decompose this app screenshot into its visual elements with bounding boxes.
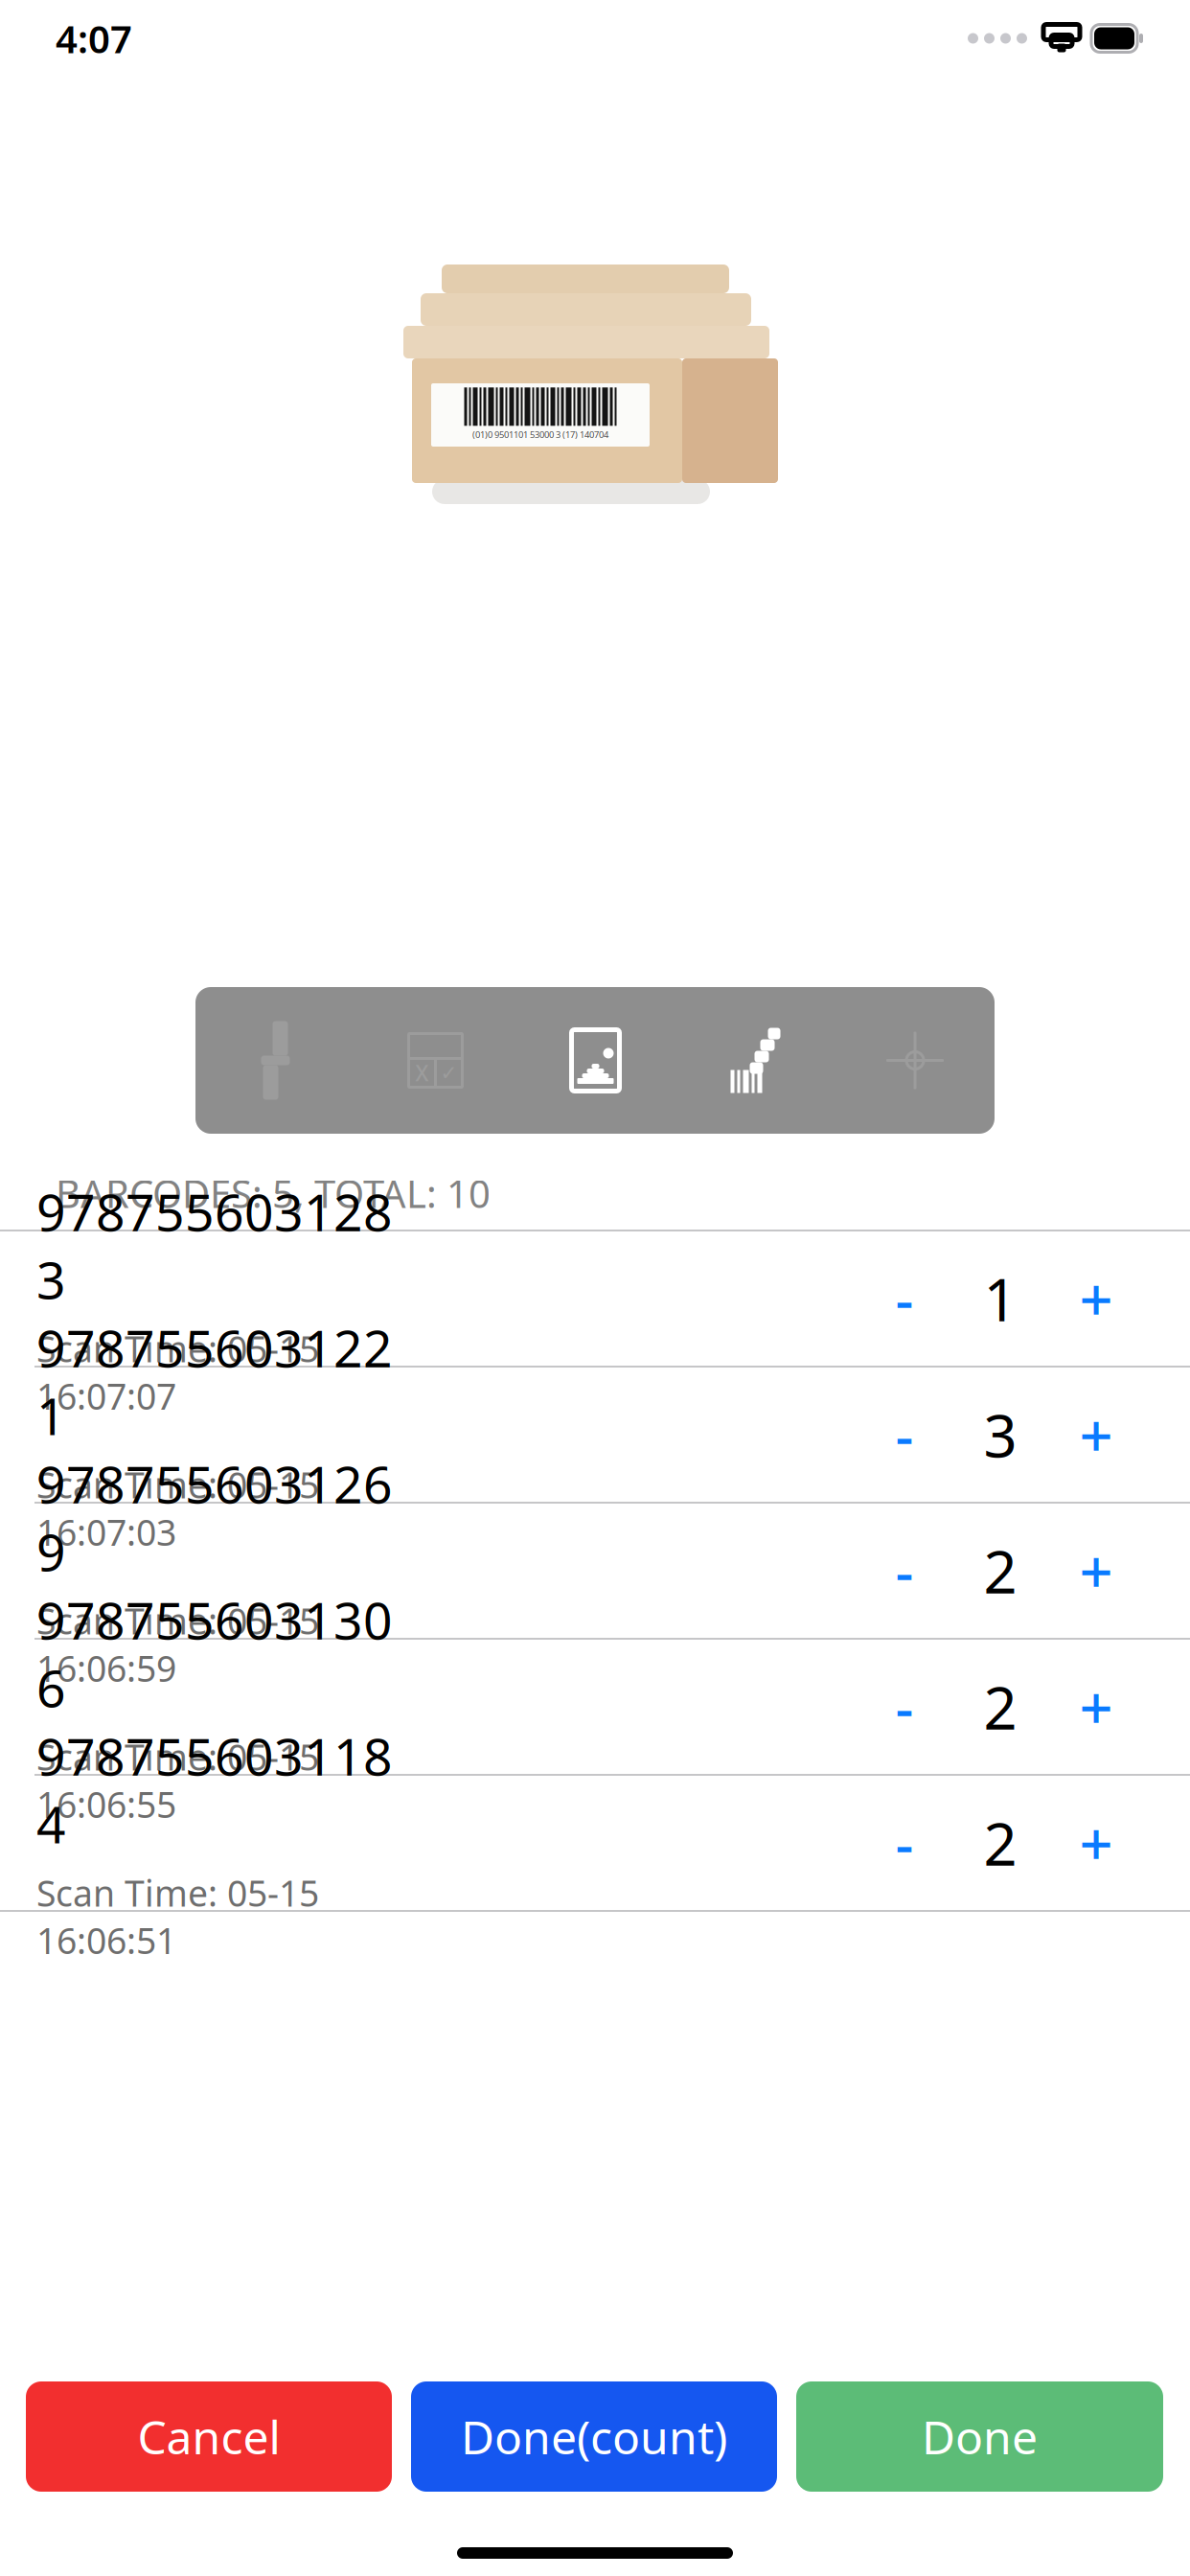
button[interactable]: Photo library	[515, 987, 675, 1134]
staticText: Done(count)	[461, 2406, 727, 2467]
button[interactable]: Decrease count	[857, 1523, 952, 1619]
staticText: (01)0 9501101 53000 3 (17) 140704	[472, 429, 608, 441]
staticText: -	[895, 1533, 914, 1608]
staticText: 1	[984, 1260, 1017, 1338]
staticText: +	[1079, 1260, 1113, 1338]
staticText: 9787556031269	[36, 1450, 393, 1585]
button[interactable]: Increase count	[1048, 1251, 1144, 1346]
staticText: +	[1079, 1668, 1113, 1746]
staticText: -	[895, 1805, 914, 1880]
button[interactable]: Increase count	[1048, 1659, 1144, 1755]
staticText: Cancel	[137, 2406, 280, 2467]
button[interactable]: Decrease count	[857, 1795, 952, 1891]
staticText: 2	[984, 1532, 1017, 1610]
button[interactable]: Increase count	[1048, 1795, 1144, 1891]
button[interactable]: Decrease count	[857, 1659, 952, 1755]
staticText: 9787556031184	[36, 1722, 393, 1857]
staticText: 3	[984, 1396, 1017, 1474]
staticText: ✓	[440, 1061, 458, 1084]
staticText: -	[895, 1669, 914, 1744]
button[interactable]: Increase count	[1048, 1523, 1144, 1619]
staticText: -	[895, 1397, 914, 1472]
staticText: +	[1079, 1396, 1113, 1474]
button[interactable]: Done	[796, 2381, 1163, 2492]
staticText: Scan Time: 05-15 16:06:55	[36, 1733, 319, 1828]
staticText: Scan Time: 05-15 16:06:59	[36, 1597, 319, 1692]
button[interactable]: Manual barcode entry	[675, 987, 835, 1134]
button[interactable]: Select mode	[355, 987, 515, 1134]
staticText: 9787556031221	[36, 1313, 393, 1449]
staticText: 2	[984, 1804, 1017, 1882]
staticText: +	[1079, 1804, 1113, 1882]
staticText: 9787556031283	[36, 1177, 393, 1313]
staticText: 2	[984, 1668, 1017, 1746]
button[interactable]: Flash	[195, 987, 355, 1134]
staticText: 9787556031306	[36, 1586, 393, 1721]
staticText: X	[415, 1058, 429, 1087]
staticText: Scan Time: 05-15 16:07:03	[36, 1461, 319, 1556]
staticText: +	[1079, 1532, 1113, 1610]
staticText: BARCODES: 5, TOTAL: 10	[56, 1168, 491, 1219]
button[interactable]: Focus target	[835, 987, 995, 1134]
staticText: -	[895, 1261, 914, 1336]
button[interactable]: Decrease count	[857, 1251, 952, 1346]
button[interactable]: Done(count)	[411, 2381, 777, 2492]
staticText: Scan Time: 05-15 16:06:51	[36, 1869, 319, 1964]
button[interactable]: Decrease count	[857, 1387, 952, 1483]
staticText: 4:07	[56, 13, 132, 64]
staticText: Scan Time: 05-15 16:07:07	[36, 1325, 319, 1420]
staticText: Done	[922, 2406, 1038, 2467]
button[interactable]: Cancel	[26, 2381, 392, 2492]
button[interactable]: Increase count	[1048, 1387, 1144, 1483]
